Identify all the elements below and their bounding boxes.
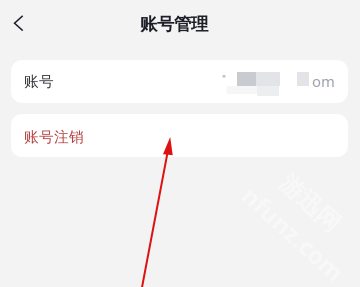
staticText: om: [312, 71, 335, 91]
button[interactable]: Back: [13, 15, 43, 47]
staticText: 账号: [24, 72, 54, 90]
staticText: 账号注销: [24, 128, 84, 146]
staticText: 账号管理: [140, 13, 208, 35]
button[interactable]: 账号: [11, 60, 348, 103]
button[interactable]: 账号注销: [11, 114, 348, 157]
